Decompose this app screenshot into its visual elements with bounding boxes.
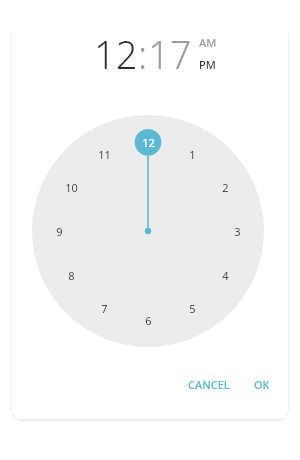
button[interactable]: AM bbox=[199, 35, 217, 50]
staticText: 11 bbox=[98, 147, 111, 162]
staticText: 2 bbox=[222, 180, 229, 195]
staticText: 10 bbox=[65, 180, 78, 195]
staticText: 5 bbox=[189, 301, 196, 316]
staticText: 1 bbox=[189, 147, 196, 162]
staticText: 6 bbox=[145, 313, 152, 328]
staticText: OK bbox=[254, 377, 270, 392]
staticText: CANCEL bbox=[188, 377, 230, 392]
staticText: 3 bbox=[234, 224, 241, 239]
button[interactable]: CANCEL bbox=[182, 373, 236, 396]
staticText: 8 bbox=[68, 268, 75, 283]
staticText: : bbox=[138, 28, 148, 80]
staticText: 9 bbox=[56, 224, 63, 239]
button[interactable]: OK bbox=[248, 373, 276, 396]
button[interactable]: PM bbox=[199, 57, 216, 72]
button[interactable]: Clock face, choose hour bbox=[32, 115, 264, 347]
staticText: 4 bbox=[222, 268, 229, 283]
staticText: PM bbox=[199, 57, 216, 72]
staticText: AM bbox=[199, 35, 217, 50]
staticText: 12 bbox=[142, 135, 155, 150]
button[interactable]: 12 bbox=[94, 28, 138, 80]
staticText: 7 bbox=[101, 301, 108, 316]
button[interactable]: 17 bbox=[148, 28, 192, 80]
